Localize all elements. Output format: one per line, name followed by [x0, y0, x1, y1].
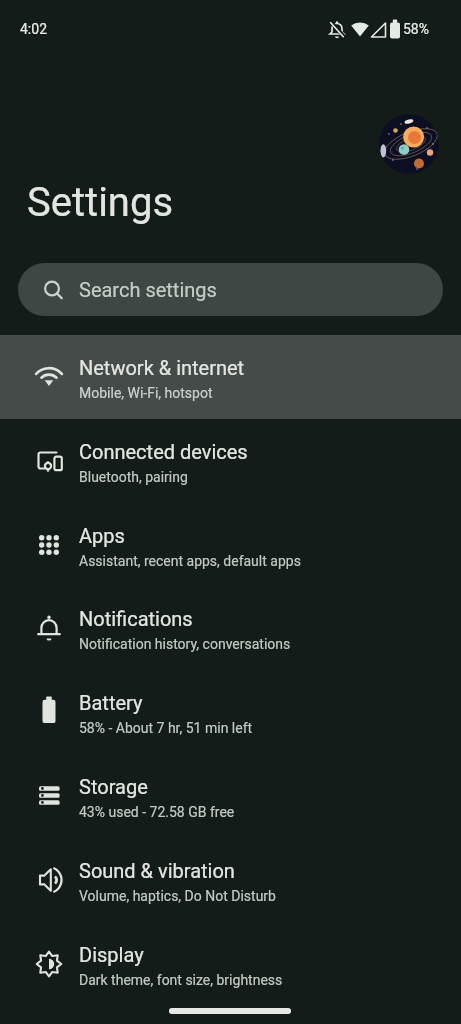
staticText: Network & internet [79, 356, 245, 379]
staticText: Battery [79, 691, 143, 714]
staticText: 4:02 [20, 21, 47, 37]
staticText: Bluetooth, pairing [79, 469, 188, 485]
staticText: Assistant, recent apps, default apps [79, 553, 301, 569]
staticText: Display [79, 943, 144, 966]
button[interactable]: Notifications [0, 586, 461, 670]
staticText: Mobile, Wi-Fi, hotspot [79, 385, 213, 401]
staticText: Sound & vibration [79, 859, 235, 882]
button[interactable]: Battery [0, 670, 461, 754]
staticText: Dark theme, font size, brightness [79, 972, 283, 988]
button[interactable] [169, 1008, 291, 1014]
staticText: Apps [79, 524, 125, 547]
button[interactable]: Storage [0, 754, 461, 838]
staticText: 58% [403, 21, 429, 37]
button[interactable]: Network & internet [0, 335, 461, 419]
staticText: 58% - About 7 hr, 51 min left [79, 720, 253, 736]
staticText: Storage [79, 775, 148, 798]
staticText: Volume, haptics, Do Not Disturb [79, 888, 276, 904]
button[interactable]: Display [0, 922, 461, 1006]
button[interactable]: Search settings [18, 263, 443, 316]
staticText: 43% used - 72.58 GB free [79, 804, 235, 820]
staticText: Search settings [79, 278, 217, 301]
button[interactable] [379, 114, 439, 174]
staticText: Connected devices [79, 440, 248, 463]
staticText: Notifications [79, 607, 193, 630]
button[interactable]: Connected devices [0, 419, 461, 503]
button[interactable]: Sound & vibration [0, 838, 461, 922]
staticText: Notification history, conversations [79, 636, 291, 652]
staticText: Settings [27, 179, 174, 226]
button[interactable]: Apps [0, 503, 461, 587]
